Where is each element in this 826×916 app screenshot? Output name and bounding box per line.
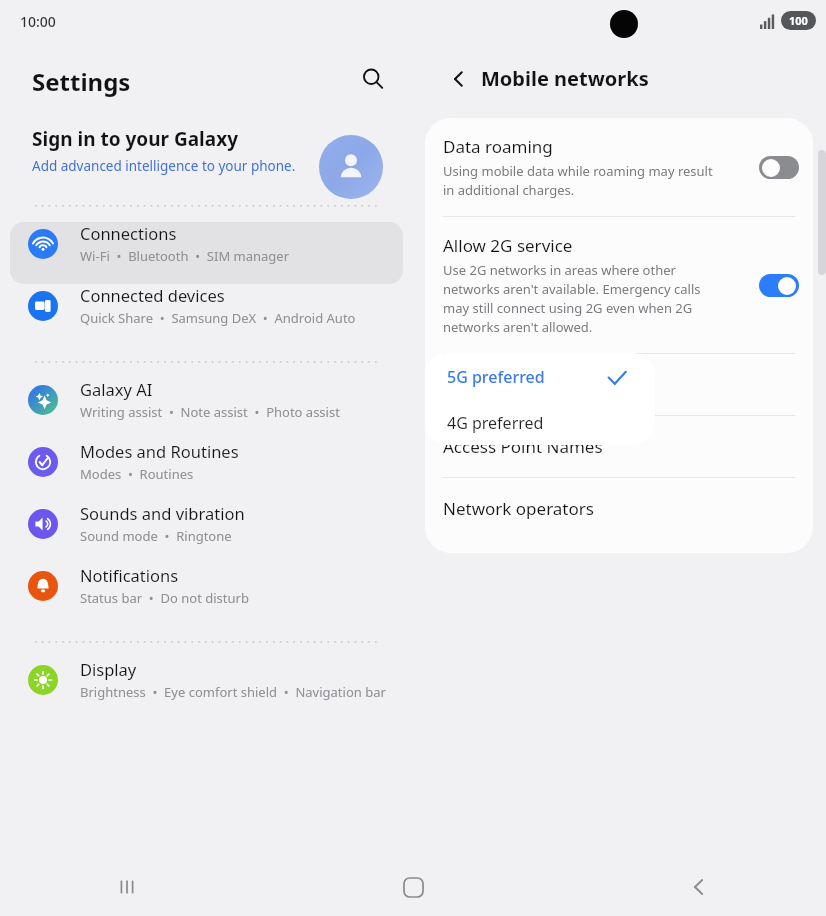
button[interactable]: Access Point Names (425, 416, 813, 477)
staticText: Network operators (443, 497, 594, 520)
staticText: Galaxy AI (80, 378, 153, 400)
staticText: Settings (32, 65, 131, 98)
staticText: Notifications (80, 564, 179, 586)
button[interactable]: Back (439, 59, 479, 99)
staticText: Connections (80, 222, 177, 244)
staticText: Add advanced intelligence to your phone. (32, 157, 296, 175)
staticText: Using mobile data while roaming may resu… (443, 162, 713, 199)
staticText: Status bar • Do not disturb (80, 589, 249, 607)
staticText: Modes • Routines (80, 465, 194, 483)
staticText: Access Point Names (443, 435, 603, 458)
button[interactable]: Modes and Routines (10, 440, 403, 502)
button[interactable]: Galaxy AI (10, 378, 403, 440)
button[interactable]: Toggle off (759, 156, 799, 179)
button[interactable]: Search (352, 58, 394, 100)
staticText: Mobile networks (481, 65, 649, 92)
staticText: 10:00 (20, 12, 56, 31)
button[interactable]: Sign in to your Galaxy (0, 102, 413, 190)
staticText: 4G preferred (447, 412, 544, 434)
staticText: Display (80, 658, 137, 680)
button[interactable]: 5G preferred (425, 353, 655, 399)
staticText: Connected devices (80, 284, 225, 306)
staticText: Quick Share • Samsung DeX • Android Auto (80, 309, 356, 327)
button[interactable]: Notifications (10, 564, 403, 626)
button[interactable]: Network mode (425, 354, 813, 415)
staticText: Wi-Fi • Bluetooth • SIM manager (80, 247, 290, 265)
button[interactable]: Recents (100, 860, 154, 914)
button[interactable]: Data roaming (425, 118, 813, 216)
staticText: Network mode (443, 373, 563, 396)
button[interactable]: Connections (10, 222, 403, 284)
button[interactable]: Connected devices (10, 284, 403, 346)
button[interactable]: Display (10, 658, 403, 730)
button[interactable]: 4G preferred (425, 399, 655, 445)
staticText: 100 (789, 13, 808, 28)
staticText: Data roaming (443, 135, 553, 158)
button[interactable]: Sounds and vibration (10, 502, 403, 564)
staticText: 5G preferred (447, 366, 545, 388)
button[interactable]: Toggle on (759, 274, 799, 297)
staticText: Use 2G networks in areas where other net… (443, 261, 701, 336)
staticText: Brightness • Eye comfort shield • Naviga… (80, 683, 386, 701)
button[interactable]: Allow 2G service (425, 217, 813, 353)
staticText: Writing assist • Note assist • Photo ass… (80, 403, 340, 421)
button[interactable]: Back (672, 860, 726, 914)
button[interactable]: Network operators (425, 478, 813, 539)
staticText: Sign in to your Galaxy (32, 126, 238, 152)
staticText: Allow 2G service (443, 234, 573, 257)
button[interactable]: Home (386, 860, 440, 914)
staticText: Modes and Routines (80, 440, 239, 462)
staticText: Sounds and vibration (80, 502, 245, 524)
staticText: Sound mode • Ringtone (80, 527, 232, 545)
